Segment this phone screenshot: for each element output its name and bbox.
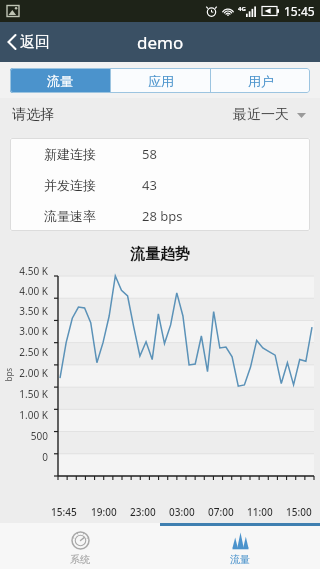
staticText: 4G: [238, 5, 246, 13]
staticText: 流量趋势: [0, 245, 320, 264]
staticText: 58: [142, 145, 157, 163]
button[interactable]: 用户: [211, 68, 310, 93]
staticText: 2.00 K: [0, 366, 48, 380]
staticText: 03:00: [169, 505, 195, 519]
staticText: 用户: [248, 73, 274, 89]
button[interactable]: 应用: [111, 68, 210, 93]
staticText: 28 bps: [142, 207, 183, 225]
staticText: 系统: [70, 553, 90, 566]
staticText: 07:00: [208, 505, 234, 519]
staticText: demo: [137, 31, 184, 54]
button[interactable]: 新建连接: [10, 138, 310, 169]
staticText: 流量: [47, 73, 73, 89]
button[interactable]: 流量: [10, 68, 110, 93]
staticText: bps: [2, 367, 13, 381]
staticText: 1.50 K: [0, 387, 48, 401]
button[interactable]: 流量: [160, 523, 320, 569]
staticText: 流量速率: [44, 208, 96, 224]
staticText: 新建连接: [44, 146, 96, 162]
staticText: 请选择: [12, 106, 54, 124]
staticText: 应用: [148, 73, 174, 89]
staticText: 500: [0, 429, 48, 443]
staticText: 15:00: [286, 505, 312, 519]
staticText: 43: [142, 176, 157, 194]
staticText: 流量: [230, 553, 250, 566]
staticText: 并发连接: [44, 177, 96, 193]
staticText: 15:45: [51, 505, 77, 519]
staticText: 15:45: [284, 3, 315, 19]
staticText: 1.00 K: [0, 408, 48, 422]
staticText: 0: [0, 450, 48, 464]
button[interactable]: 返回: [0, 22, 60, 62]
button[interactable]: 最近一天: [231, 102, 308, 128]
staticText: 3.00 K: [0, 324, 48, 338]
staticText: 4.50 K: [0, 264, 48, 278]
staticText: 19:00: [91, 505, 117, 519]
staticText: 3.50 K: [0, 304, 48, 318]
button[interactable]: 系统: [0, 523, 160, 569]
staticText: 23:00: [130, 505, 156, 519]
staticText: 返回: [20, 33, 50, 52]
staticText: 最近一天: [233, 106, 289, 124]
staticText: 2.50 K: [0, 345, 48, 359]
staticText: 11:00: [247, 505, 273, 519]
button[interactable]: 流量速率: [10, 200, 310, 231]
button[interactable]: 并发连接: [10, 169, 310, 200]
staticText: 4.00 K: [0, 284, 48, 298]
